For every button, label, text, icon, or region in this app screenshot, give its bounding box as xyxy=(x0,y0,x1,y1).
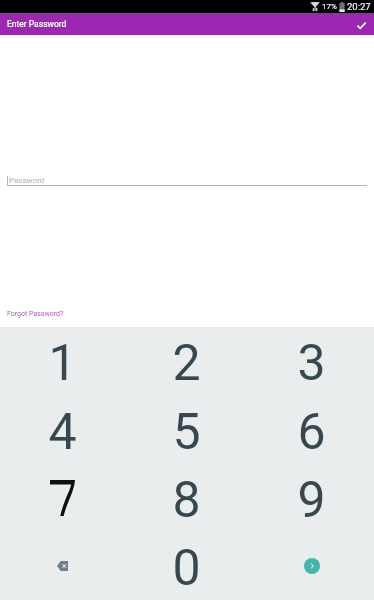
staticText: 1 xyxy=(48,334,77,393)
button[interactable]: 3 xyxy=(249,327,374,396)
staticText: Password xyxy=(9,176,45,185)
staticText: 5 xyxy=(172,403,201,462)
staticText: 3 xyxy=(297,334,326,393)
button[interactable]: 1 xyxy=(0,327,124,396)
button[interactable]: 8 xyxy=(124,464,249,532)
button[interactable]: Confirm xyxy=(348,13,374,35)
button[interactable]: 0 xyxy=(124,532,249,600)
button[interactable]: 5 xyxy=(124,396,249,464)
button[interactable]: 7 xyxy=(0,464,124,532)
staticText: 17% xyxy=(322,2,337,11)
staticText: 6 xyxy=(297,403,326,462)
staticText: 2 xyxy=(172,334,201,393)
button[interactable]: Submit xyxy=(304,558,320,574)
staticText: 9 xyxy=(297,471,326,530)
staticText: Forgot Password? xyxy=(7,310,64,318)
button[interactable]: Forgot Password? xyxy=(7,310,64,318)
button[interactable]: 9 xyxy=(249,464,374,532)
button[interactable]: 6 xyxy=(249,396,374,464)
staticText: 4 xyxy=(48,403,77,462)
staticText: Enter Password xyxy=(7,19,67,29)
staticText: 0 xyxy=(172,539,201,598)
staticText: 20:27 xyxy=(347,1,371,12)
button[interactable]: 2 xyxy=(124,327,249,396)
staticText: 8 xyxy=(172,471,201,530)
button[interactable]: Backspace xyxy=(0,532,124,600)
button[interactable]: 4 xyxy=(0,396,124,464)
